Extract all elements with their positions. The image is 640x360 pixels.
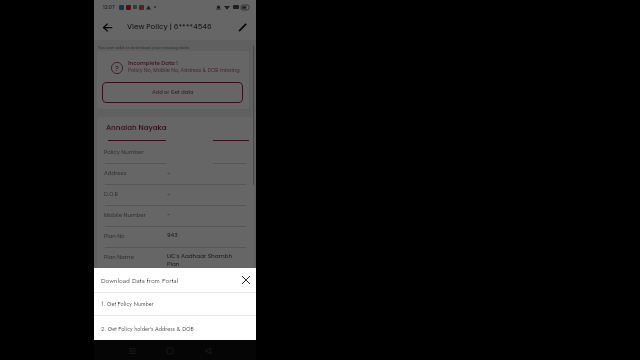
button[interactable]: Back xyxy=(203,346,213,356)
staticText: 2. Get Policy holder's Address & DOB xyxy=(101,325,194,333)
staticText: LIC's Aadhaar Shambh Plan xyxy=(167,252,234,268)
button[interactable]: 2. Get Policy holder's Address & DOB xyxy=(94,316,256,340)
button[interactable] xyxy=(97,205,254,226)
staticText: - xyxy=(167,190,171,198)
staticText: Annaiah Nayaka xyxy=(106,123,167,133)
button[interactable] xyxy=(97,163,254,184)
staticText: 12:07 xyxy=(103,4,115,11)
staticText: Mobile Number xyxy=(104,211,146,219)
button[interactable] xyxy=(97,141,254,163)
staticText: View Policy | 6****4546 xyxy=(127,21,212,31)
staticText: 943 xyxy=(167,231,178,239)
staticText: - xyxy=(167,210,171,218)
button[interactable]: Close xyxy=(239,273,253,287)
button[interactable]: Recent apps xyxy=(127,346,137,356)
staticText: Policy No, Mobile No, Address & DOB miss… xyxy=(128,67,240,74)
staticText: Incomplete Data ! xyxy=(128,59,179,67)
staticText: D.O.B xyxy=(104,190,118,198)
staticText: Plan Name xyxy=(104,253,134,261)
staticText: - xyxy=(167,169,171,177)
staticText: Plan No xyxy=(104,232,125,240)
button[interactable] xyxy=(97,247,254,268)
button[interactable]: Edit xyxy=(232,17,253,38)
staticText: Address xyxy=(104,169,127,177)
staticText: ? xyxy=(115,63,119,73)
button[interactable] xyxy=(97,226,254,247)
staticText: You can add or download your missing dat… xyxy=(98,45,189,51)
button[interactable]: Back xyxy=(97,17,118,38)
button[interactable] xyxy=(97,184,254,205)
button[interactable]: Home xyxy=(165,346,175,356)
button[interactable]: 1. Get Policy Number xyxy=(94,293,256,315)
button[interactable]: Add or Get data xyxy=(102,82,243,103)
staticText: 1. Get Policy Number xyxy=(101,300,154,308)
staticText: Download Data from Portal xyxy=(101,276,178,286)
staticText: Add or Get data xyxy=(152,89,194,96)
staticText: Policy Number xyxy=(104,148,144,156)
